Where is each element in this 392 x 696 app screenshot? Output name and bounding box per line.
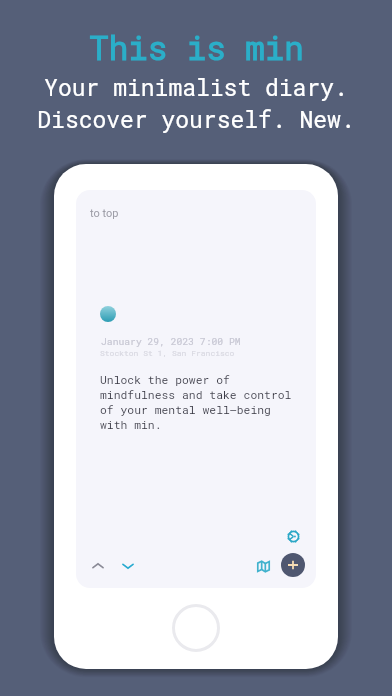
button[interactable]: Settings [281,524,305,548]
button[interactable]: Previous entry [86,554,110,578]
button[interactable]: Next entry [116,554,140,578]
staticText: Unlock the power of mindfulness and take… [100,372,292,432]
button[interactable]: Map [251,554,275,578]
staticText: Your minimalist diary. Discover yourself… [37,72,355,134]
staticText: to top [90,207,119,220]
button[interactable]: Add entry [281,553,305,577]
staticText: January 29, 2023 7:00 PM [101,335,241,348]
staticText: Stockton St 1, San Francisco [100,348,235,359]
staticText: This is min [89,26,304,69]
